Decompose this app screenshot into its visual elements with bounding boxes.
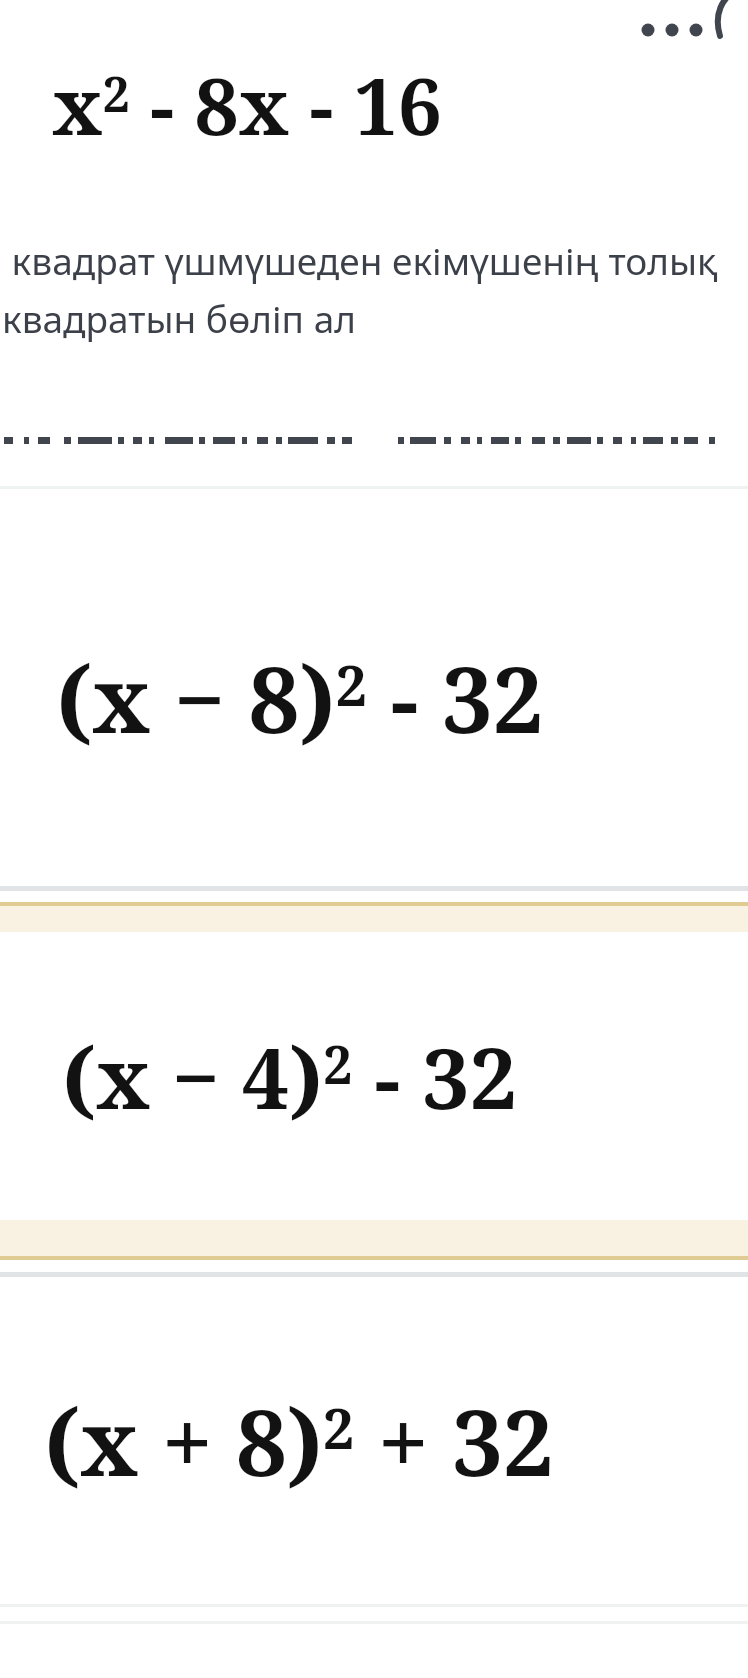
- button[interactable]: (x − 4)2 - 32: [0, 902, 748, 1260]
- staticText: (x + 8)2 + 32: [44, 1380, 554, 1503]
- staticText: x2 - 8x - 16: [52, 52, 442, 158]
- button[interactable]: More options: [634, 6, 744, 58]
- staticText: (x − 8)2 - 32: [56, 637, 544, 760]
- staticText: квадрат үшмүшеден екімүшенің толық квадр…: [2, 235, 748, 343]
- button[interactable]: (x − 8)2 - 32: [0, 490, 748, 886]
- staticText: (x − 4)2 - 32: [62, 1019, 517, 1133]
- button[interactable]: (x + 8)2 + 32: [0, 1278, 748, 1604]
